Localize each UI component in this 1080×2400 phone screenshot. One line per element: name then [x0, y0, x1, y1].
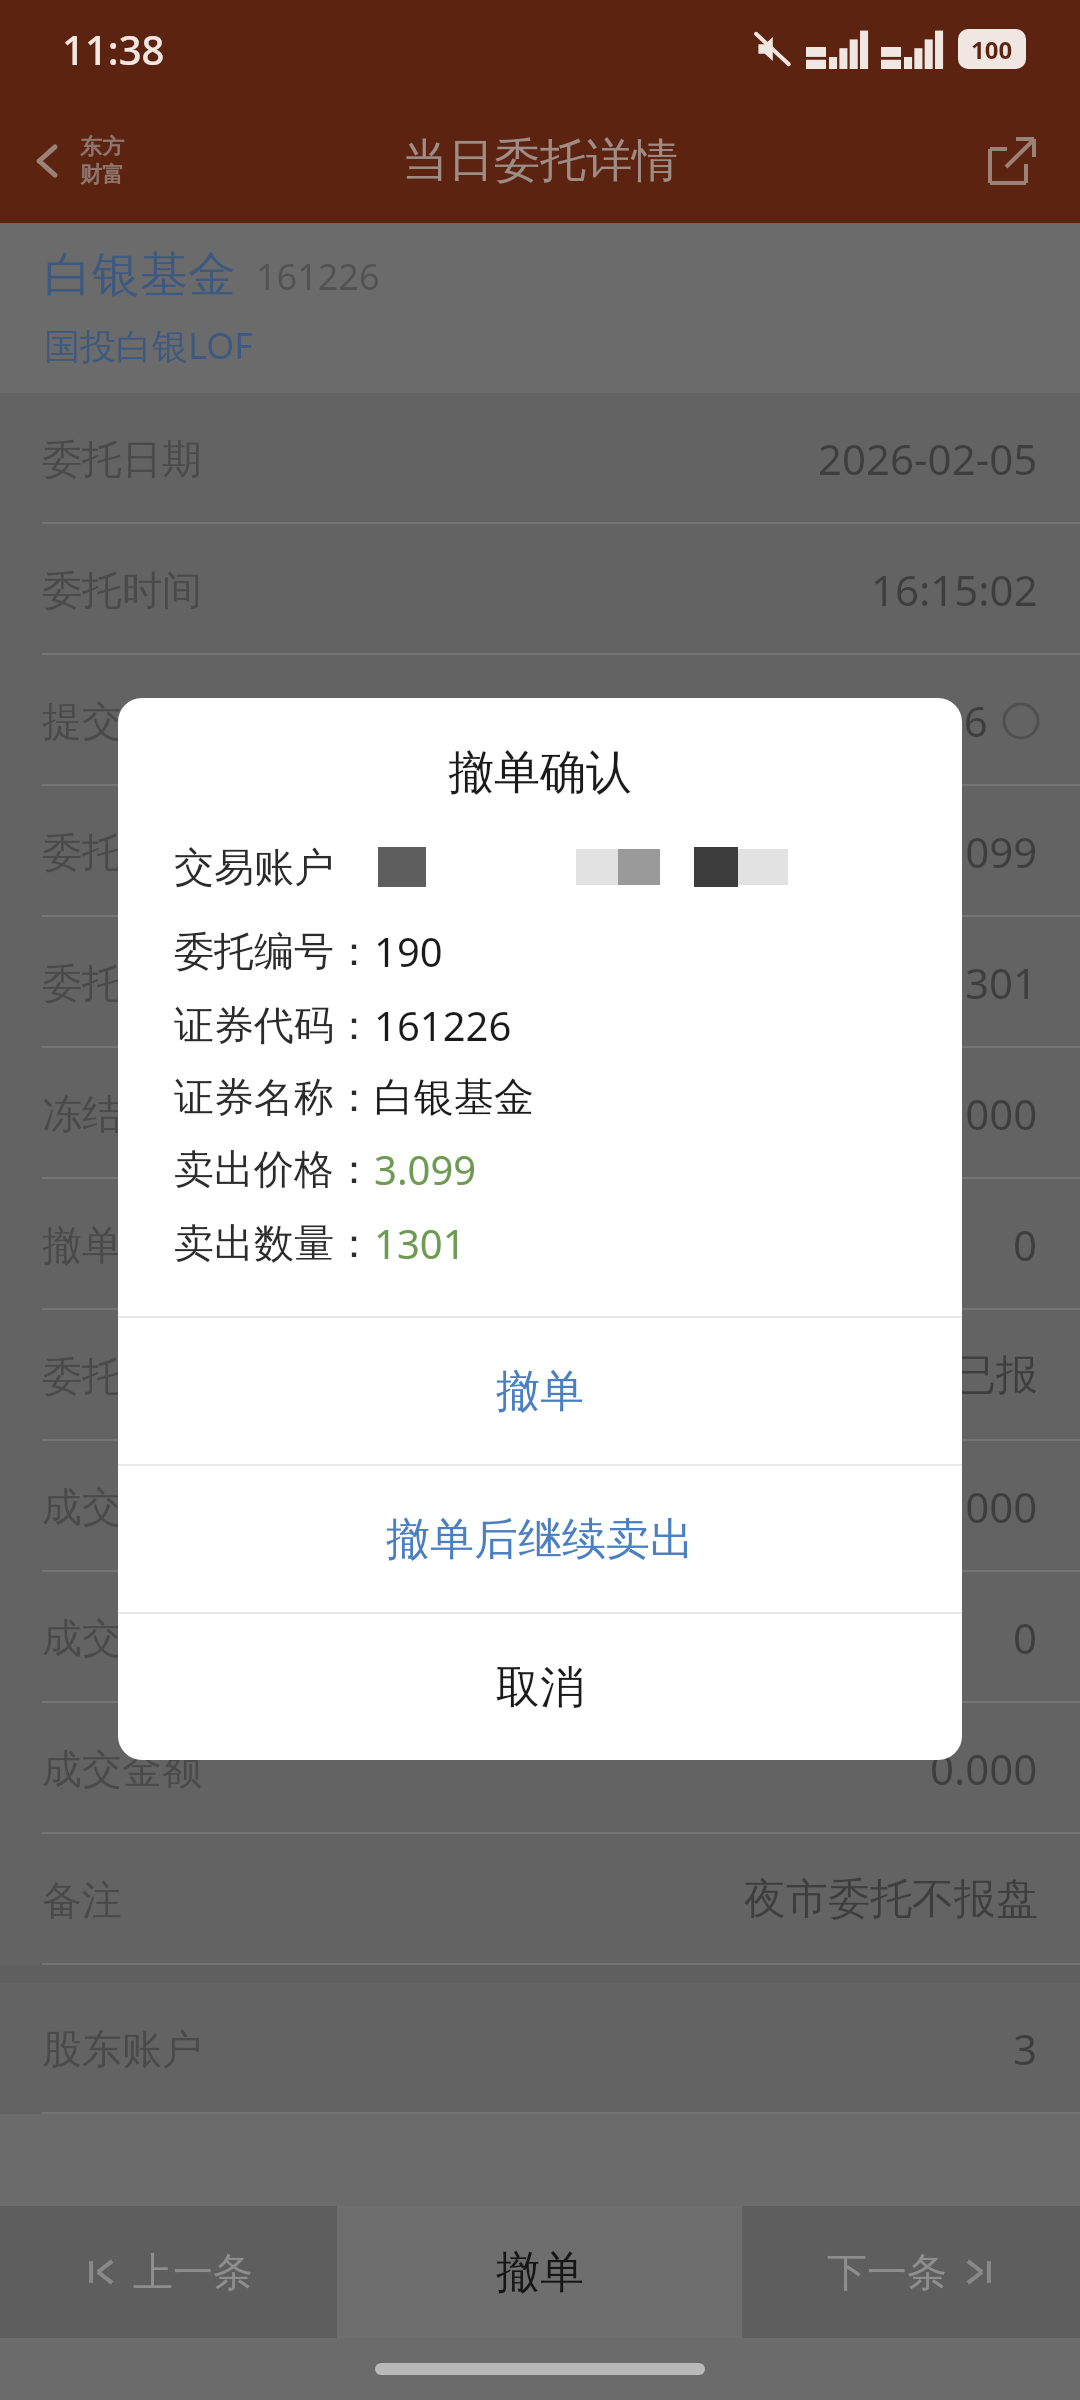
- staticText: 0.000: [930, 1740, 1038, 1797]
- button[interactable]: 撤单后继续卖出: [118, 1466, 962, 1612]
- staticText: 委托数量: [42, 958, 202, 1008]
- staticText: 上一条: [133, 2247, 253, 2297]
- staticText: 撤单: [496, 1364, 584, 1419]
- staticText: 1301: [374, 1216, 466, 1270]
- button[interactable]: 取消: [118, 1614, 962, 1760]
- staticText: 0: [1013, 1609, 1038, 1666]
- staticText: 161226: [256, 252, 380, 301]
- staticText: 成交均价: [42, 1613, 202, 1663]
- button[interactable]: Share: [976, 126, 1046, 196]
- staticText: 3.099: [930, 823, 1038, 880]
- button[interactable]: 撤单: [118, 1318, 962, 1464]
- button[interactable]: Back: [14, 123, 136, 199]
- staticText: 成交数量: [42, 1482, 202, 1532]
- button[interactable]: 上一条: [0, 2206, 337, 2338]
- staticText: 证券代码：: [174, 1000, 374, 1050]
- staticText: 委托编号：: [174, 926, 374, 976]
- staticText: 161226: [374, 998, 512, 1052]
- staticText: 委托日期: [42, 434, 202, 484]
- staticText: 11:38: [62, 22, 165, 76]
- staticText: 白银基金: [44, 245, 236, 305]
- staticText: 190: [374, 924, 443, 978]
- staticText: 夜市委托不报盘: [744, 1873, 1038, 1926]
- staticText: 撤单数量: [42, 1220, 202, 1270]
- button[interactable]: 下一条: [742, 2206, 1080, 2338]
- staticText: 卖出价格：: [174, 1144, 374, 1194]
- staticText: 下一条: [827, 2247, 947, 2297]
- staticText: 提交时间: [42, 696, 202, 746]
- staticText: 2026-02-05: [818, 430, 1038, 487]
- staticText: 委托价格: [42, 827, 202, 877]
- staticText: 3.099: [374, 1142, 477, 1196]
- staticText: 0.000: [930, 1085, 1038, 1142]
- staticText: 股东账户: [42, 2024, 202, 2074]
- staticText: 0.000: [930, 1478, 1038, 1535]
- staticText: 备注: [42, 1875, 122, 1925]
- staticText: 白银基金: [374, 1072, 534, 1122]
- button[interactable]: 撤单: [337, 2206, 742, 2338]
- staticText: 交易账户: [174, 842, 334, 892]
- staticText: 0: [1013, 1216, 1038, 1273]
- staticText: 1301: [941, 954, 1038, 1011]
- staticText: 财富: [80, 161, 124, 189]
- staticText: 卖出数量：: [174, 1218, 374, 1268]
- staticText: 国投白银LOF: [44, 321, 253, 370]
- staticText: 委托时间: [42, 565, 202, 615]
- staticText: 16:15:02: [871, 561, 1038, 618]
- staticText: 撤单: [496, 2245, 584, 2300]
- staticText: 冻结金额: [42, 1089, 202, 1139]
- staticText: 100: [971, 33, 1013, 66]
- staticText: 取消: [496, 1660, 584, 1715]
- staticText: 当日委托详情: [402, 132, 678, 190]
- staticText: 16:15:06: [821, 692, 988, 749]
- staticText: 3: [1013, 2020, 1038, 2077]
- staticText: 撤单确认: [118, 744, 962, 802]
- staticText: 撤单后继续卖出: [386, 1512, 694, 1567]
- staticText: 东方: [80, 133, 124, 161]
- staticText: 委托状态: [42, 1351, 202, 1401]
- staticText: 成交金额: [42, 1744, 202, 1794]
- staticText: 已报: [954, 1349, 1038, 1402]
- staticText: 证券名称：: [174, 1072, 374, 1122]
